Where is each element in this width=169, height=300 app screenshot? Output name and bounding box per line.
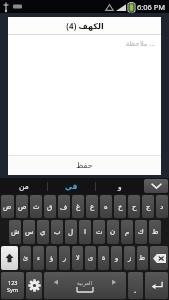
staticText: ئ [23,254,29,262]
staticText: من [19,182,29,191]
button[interactable]: ث [30,195,42,218]
button[interactable]: من [0,178,47,194]
button[interactable]: Backspace [150,246,168,270]
button[interactable]: في [48,178,95,194]
staticText: ة [102,254,106,262]
staticText: س [25,228,34,236]
button[interactable]: Enter [145,272,168,299]
button[interactable]: ط [149,220,161,244]
button[interactable]: ق [44,195,56,218]
staticText: لا [76,254,80,262]
staticText: ي [40,228,46,236]
button[interactable]: غ [72,195,84,218]
staticText: و [118,182,122,191]
staticText: ه [104,203,108,211]
button[interactable]: ف [58,195,70,218]
button[interactable]: ر [59,246,70,270]
staticText: ك [138,228,144,236]
staticText: ح [132,203,137,211]
staticText: ى [88,254,94,262]
button[interactable]: ش [9,220,21,244]
button[interactable]: ت [93,220,105,244]
button[interactable]: ب [51,220,63,244]
staticText: ج [146,203,151,211]
button[interactable]: Symbols [1,272,24,299]
button[interactable]: ص [16,195,28,218]
staticText: ا [84,228,86,236]
button[interactable]: حفظ [8,156,161,175]
button[interactable]: Space [44,272,126,299]
button[interactable]: ع [86,195,98,218]
button[interactable]: ل [65,220,77,244]
button[interactable]: س [23,220,35,244]
button[interactable]: ض [1,195,14,218]
staticText: 6:06 PM [137,2,166,12]
button[interactable]: ء [33,246,44,270]
button[interactable]: و [111,246,122,270]
staticText: ف [60,203,68,211]
staticText: ش [11,228,20,236]
staticText: ؤ [50,254,54,262]
button[interactable]: Shift [1,246,18,270]
button[interactable]: ز [124,246,135,270]
staticText: ر [63,254,67,262]
staticText: ء [37,254,41,262]
staticText: م [125,228,130,236]
button[interactable]: ه [100,195,112,218]
button[interactable]: ة [98,246,109,270]
button[interactable]: د [156,195,168,218]
staticText: د [160,203,164,211]
staticText: ص [18,203,27,211]
button[interactable]: و [96,178,143,194]
button[interactable]: ى [85,246,96,270]
staticText: و [115,254,119,262]
button[interactable]: ا [79,220,91,244]
staticText: ت [96,228,103,236]
staticText: ط [152,228,159,236]
button[interactable]: خ [114,195,126,218]
staticText: ل [68,228,74,236]
button[interactable]: ح [128,195,140,218]
staticText: ع [90,203,95,211]
button[interactable]: ي [37,220,49,244]
staticText: خ [118,203,123,211]
staticText: Sym [7,286,18,293]
button[interactable]: م [121,220,133,244]
button[interactable]: لا [72,246,83,270]
staticText: ملاحظة ... [125,39,155,49]
staticText: في [65,182,78,191]
button[interactable]: Settings [26,272,42,299]
staticText: ن [110,228,116,236]
staticText: ض [3,203,12,211]
button[interactable]: ن [107,220,119,244]
button[interactable]: ك [135,220,147,244]
staticText: ب [54,228,61,236]
button[interactable]: ظ [137,246,148,270]
staticText: ق [47,203,53,211]
staticText: ظ [139,254,146,262]
staticText: حفظ [76,161,93,170]
button[interactable]: Expand suggestions [144,179,168,193]
button[interactable]: الكهف (4) [8,17,161,34]
staticText: العربية [77,280,93,286]
staticText: غ [76,203,81,211]
staticText: الكهف (4) [66,20,104,31]
staticText: 123 [8,279,18,286]
staticText: ث [33,203,40,211]
button[interactable]: ج [142,195,154,218]
staticText: ز [128,254,132,262]
button[interactable]: Period [128,272,143,299]
button[interactable]: ئ [20,246,31,270]
staticText: . [134,284,137,295]
button[interactable]: ؤ [46,246,57,270]
